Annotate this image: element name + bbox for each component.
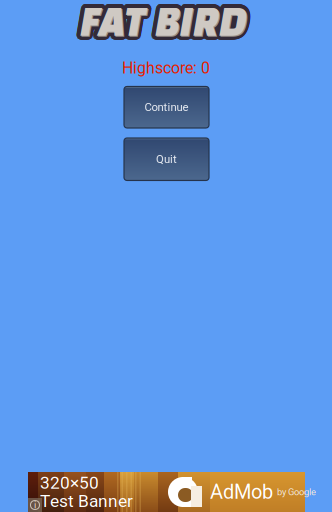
staticText: Quit [156, 153, 177, 166]
staticText: FAT BIRD [84, 0, 251, 43]
staticText: FAT BIRD [77, 0, 244, 46]
staticText: Google [288, 486, 316, 497]
staticText: FAT BIRD [76, 0, 243, 45]
staticText: FAT BIRD [76, 0, 243, 44]
staticText: FAT BIRD [80, 0, 247, 40]
staticText: FAT BIRD [80, 0, 247, 44]
staticText: FAT BIRD [82, 0, 249, 40]
staticText: FAT BIRD [81, 1, 248, 48]
staticText: FAT BIRD [79, 0, 246, 40]
staticText: FAT BIRD [77, 0, 244, 41]
button[interactable]: Continue [124, 86, 209, 128]
staticText: FAT BIRD [83, 0, 250, 41]
staticText: FAT BIRD [83, 0, 250, 46]
staticText: FAT BIRD [83, 0, 250, 42]
staticText: FAT BIRD [76, 0, 243, 42]
staticText: FAT BIRD [81, 0, 248, 45]
staticText: Continue [144, 101, 188, 114]
staticText: FAT BIRD [82, 0, 249, 47]
staticText: FAT BIRD [84, 0, 251, 44]
staticText: FAT BIRD [76, 0, 243, 46]
staticText: 320×50 [40, 473, 99, 493]
staticText: i [34, 499, 36, 510]
staticText: FAT BIRD [81, 0, 248, 40]
staticText: FAT BIRD [76, 0, 243, 43]
staticText: FAT BIRD [78, 0, 245, 47]
staticText: FAT BIRD [83, 0, 250, 46]
staticText: FAT BIRD [78, 0, 245, 40]
staticText: Highscore: 0 [122, 59, 210, 77]
button[interactable]: Quit [124, 138, 209, 180]
staticText: AdMob [210, 480, 273, 504]
button[interactable]: 320×50 [28, 472, 305, 512]
staticText: FAT BIRD [84, 0, 251, 45]
staticText: FAT BIRD [79, 1, 246, 48]
staticText: FAT BIRD [80, 1, 247, 48]
staticText: Test Banner [40, 491, 133, 511]
staticText: by [277, 486, 286, 497]
